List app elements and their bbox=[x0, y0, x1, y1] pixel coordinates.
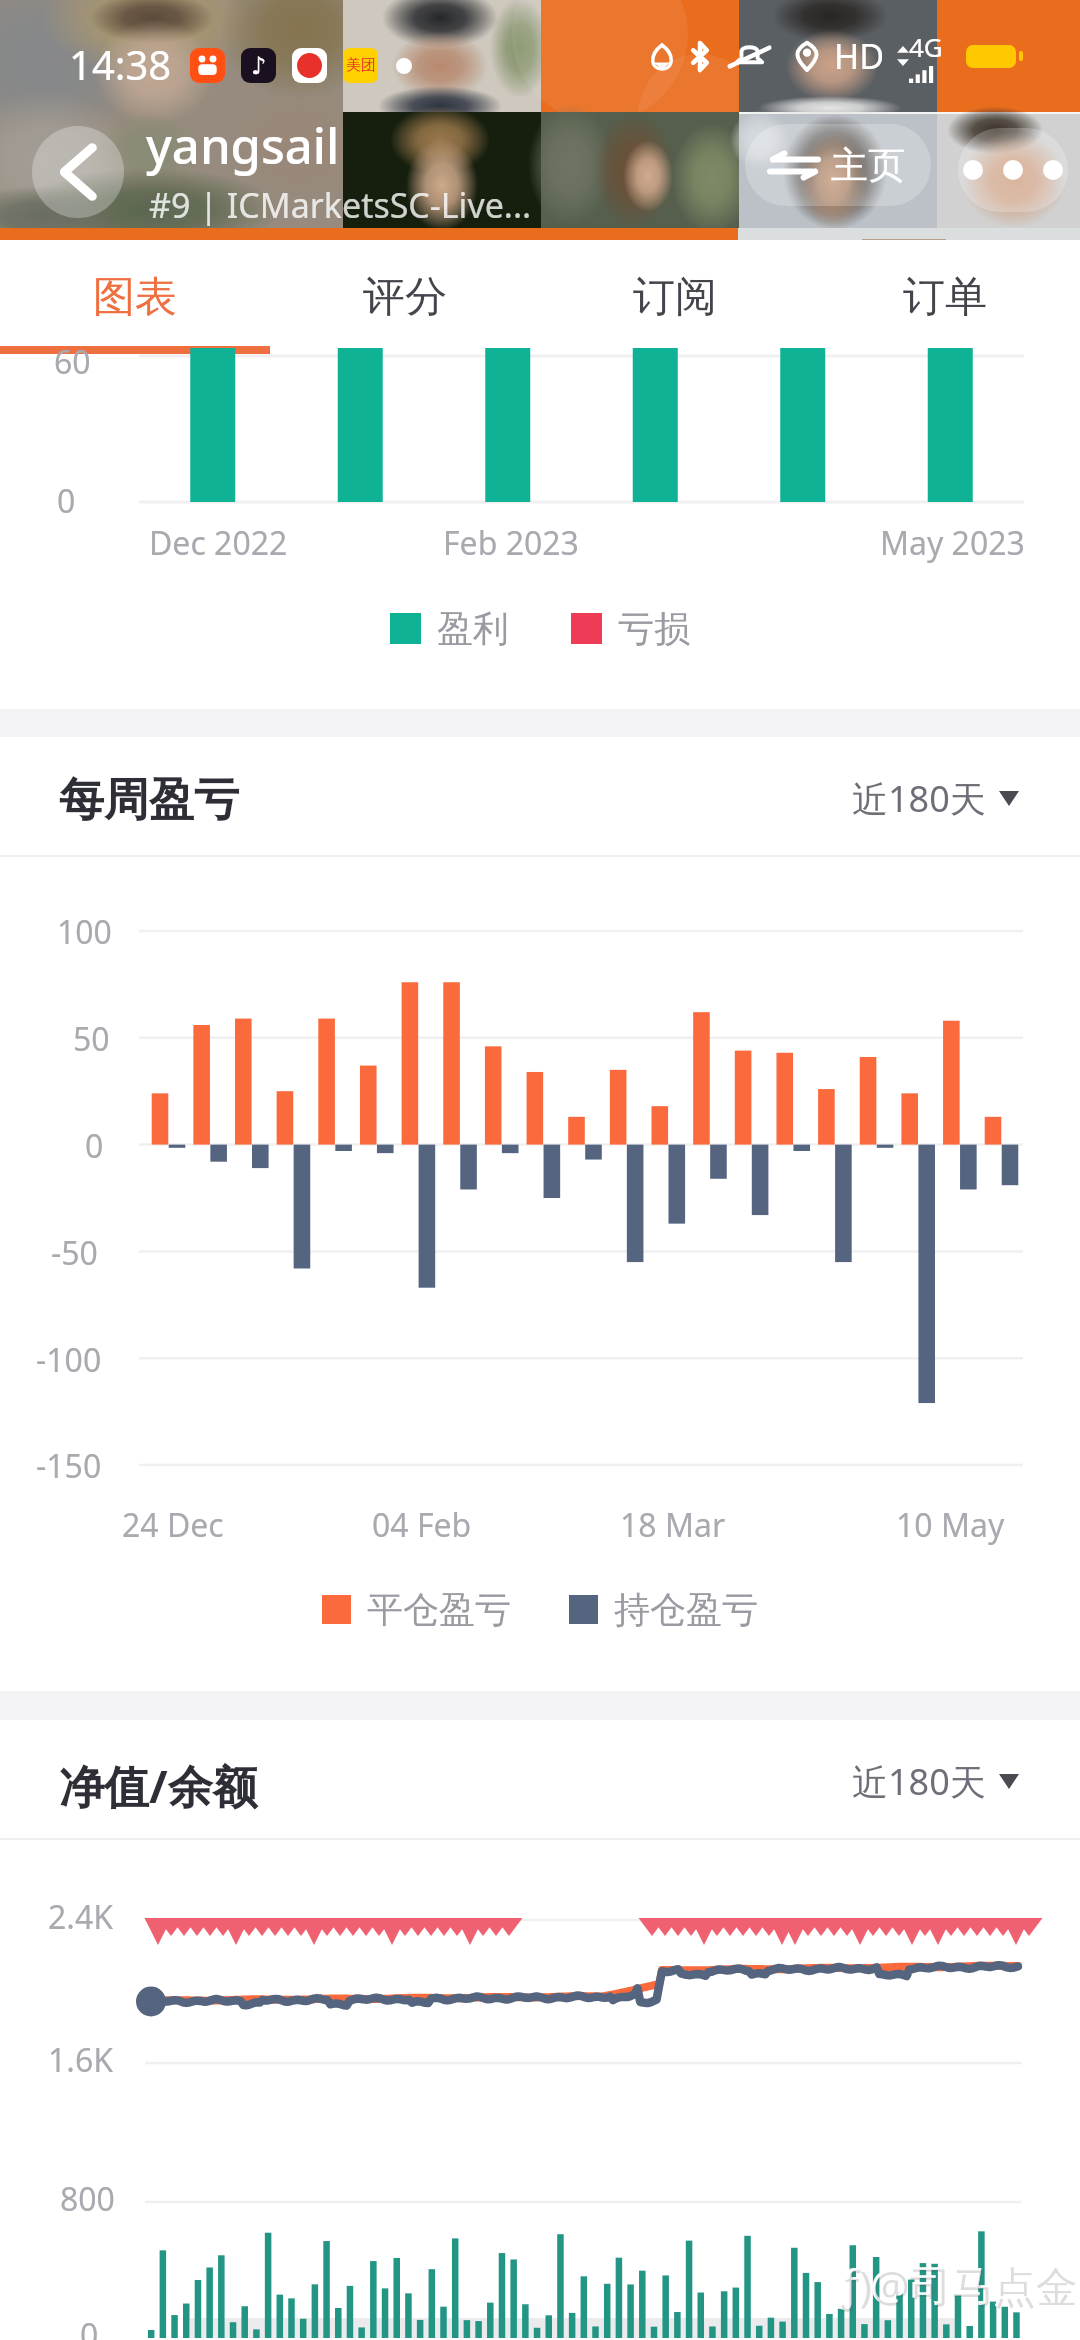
staticText: 亏损 bbox=[618, 606, 690, 651]
staticText: #9 | ICMarketsSC-Live... bbox=[149, 182, 532, 228]
button[interactable]: 评分 bbox=[270, 240, 540, 354]
staticText: 近180天 bbox=[852, 774, 986, 823]
staticText: 订单 bbox=[903, 271, 987, 324]
staticText: 18 Mar bbox=[620, 1503, 726, 1547]
button[interactable]: 图表 bbox=[0, 240, 270, 354]
staticText: ƒ)@司马点金 bbox=[842, 2257, 1078, 2314]
button[interactable]: 主页 bbox=[745, 124, 931, 206]
staticText: Dec 2022 bbox=[149, 521, 288, 565]
button[interactable]: 盈利 bbox=[390, 606, 509, 651]
staticText: 图表 bbox=[93, 271, 177, 324]
button[interactable]: 近180天 bbox=[846, 763, 1031, 833]
button[interactable]: 持仓盈亏 bbox=[569, 1587, 758, 1631]
staticText: 50 bbox=[73, 1017, 110, 1061]
button[interactable]: More options bbox=[958, 128, 1068, 212]
button[interactable]: 亏损 bbox=[571, 606, 690, 651]
staticText: 10 May bbox=[896, 1503, 1005, 1547]
staticText: -150 bbox=[36, 1444, 102, 1488]
staticText: 0 bbox=[80, 2313, 99, 2340]
staticText: ♪ bbox=[251, 52, 267, 80]
staticText: 盈利 bbox=[437, 606, 509, 651]
button[interactable]: 订单 bbox=[810, 240, 1080, 354]
staticText: 0 bbox=[57, 479, 76, 523]
staticText: 近180天 bbox=[852, 1757, 986, 1806]
staticText: 2.4K bbox=[48, 1895, 113, 1939]
staticText: -100 bbox=[36, 1338, 102, 1382]
staticText: 主页 bbox=[831, 142, 905, 189]
staticText: 评分 bbox=[363, 271, 447, 324]
staticText: Feb 2023 bbox=[443, 521, 579, 565]
button[interactable]: 订阅 bbox=[540, 240, 810, 354]
staticText: yangsail bbox=[146, 112, 340, 179]
staticText: 100 bbox=[57, 910, 112, 954]
button[interactable]: Back bbox=[32, 126, 124, 218]
staticText: 24 Dec bbox=[122, 1503, 224, 1547]
staticText: 美团 bbox=[346, 56, 376, 75]
staticText: 每周盈亏 bbox=[59, 772, 239, 829]
staticText: -50 bbox=[51, 1231, 98, 1275]
staticText: 订阅 bbox=[633, 271, 717, 324]
button[interactable]: 平仓盈亏 bbox=[322, 1587, 511, 1631]
staticText: 60 bbox=[54, 340, 91, 384]
staticText: 14:38 bbox=[69, 37, 172, 91]
staticText: 04 Feb bbox=[372, 1503, 472, 1547]
staticText: ƒ)@司马点金 bbox=[840, 2255, 1076, 2312]
staticText: 4G bbox=[909, 29, 943, 64]
staticText: 1.6K bbox=[48, 2038, 113, 2082]
staticText: 平仓盈亏 bbox=[367, 1587, 511, 1631]
staticText: 0 bbox=[85, 1124, 104, 1168]
button[interactable]: 近180天 bbox=[846, 1746, 1031, 1816]
staticText: HD bbox=[834, 33, 885, 79]
staticText: 800 bbox=[60, 2177, 115, 2221]
staticText: May 2023 bbox=[880, 521, 1025, 565]
staticText: 净值/余额 bbox=[59, 1755, 258, 1816]
staticText: 持仓盈亏 bbox=[614, 1587, 758, 1631]
